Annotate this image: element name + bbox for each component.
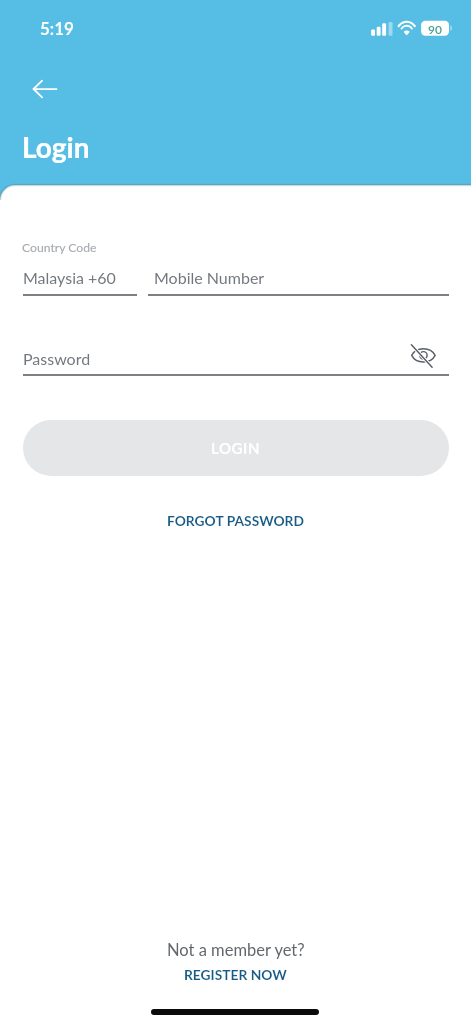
button[interactable]: REGISTER NOW: [175, 962, 296, 986]
staticText: Country Code: [22, 240, 97, 255]
staticText: 90: [428, 22, 442, 36]
staticText: FORGOT PASSWORD: [167, 512, 304, 529]
button[interactable]: LOGIN: [23, 420, 449, 476]
staticText: Malaysia +60: [23, 268, 116, 287]
staticText: Not a member yet?: [167, 940, 305, 960]
staticText: 5:19: [40, 18, 74, 38]
button[interactable]: Back: [28, 74, 62, 104]
staticText: REGISTER NOW: [184, 966, 287, 983]
staticText: Mobile Number: [154, 268, 265, 287]
button[interactable]: Show password: [408, 340, 439, 371]
staticText: Password: [23, 349, 91, 368]
staticText: Login: [22, 130, 90, 164]
button[interactable]: FORGOT PASSWORD: [160, 505, 311, 535]
staticText: LOGIN: [211, 439, 261, 457]
